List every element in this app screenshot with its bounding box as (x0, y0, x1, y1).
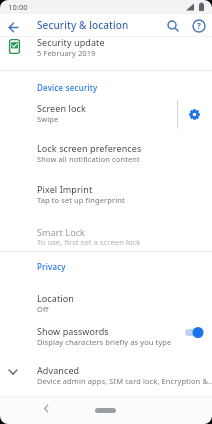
staticText: Display characters briefly as you type (37, 337, 172, 347)
button[interactable]: Advanced (0, 358, 212, 394)
staticText: Location (37, 292, 74, 304)
button[interactable]: Location (0, 287, 212, 320)
button[interactable] (95, 408, 116, 413)
staticText: Privacy (37, 261, 66, 272)
staticText: Advanced (37, 364, 80, 376)
button[interactable] (163, 16, 183, 36)
button[interactable] (38, 400, 54, 414)
button[interactable] (4, 17, 24, 37)
staticText: Security update (37, 36, 105, 48)
button[interactable]: Security update (0, 36, 212, 70)
staticText: 5 February 2019 (37, 48, 96, 58)
staticText: Show passwords (37, 325, 109, 337)
button[interactable]: Pixel Imprint (0, 177, 212, 215)
button[interactable]: Show passwords (0, 320, 212, 356)
staticText: Off (37, 304, 49, 314)
staticText: Show all notification content (37, 154, 140, 164)
staticText: Tap to set up fingerprint (37, 195, 125, 205)
button[interactable]: Smart Lock (0, 221, 212, 252)
staticText: Security & location (37, 18, 129, 32)
staticText: To use, first set a screen lock (37, 237, 141, 247)
staticText: Screen lock (37, 102, 86, 114)
staticText: Device admin apps, SIM card lock, Encryp… (37, 376, 212, 386)
staticText: Device security (37, 82, 98, 93)
staticText: ? (197, 20, 201, 31)
staticText: Pixel Imprint (37, 183, 93, 195)
staticText: 10:00 (8, 2, 28, 12)
staticText: Smart Lock (37, 226, 85, 238)
button[interactable]: ? (189, 16, 209, 36)
staticText: Lock screen preferences (37, 142, 142, 154)
staticText: Swipe (37, 114, 59, 124)
button[interactable]: Lock screen preferences (0, 136, 212, 174)
button[interactable]: Screen lock (0, 96, 170, 132)
button[interactable] (184, 104, 205, 125)
